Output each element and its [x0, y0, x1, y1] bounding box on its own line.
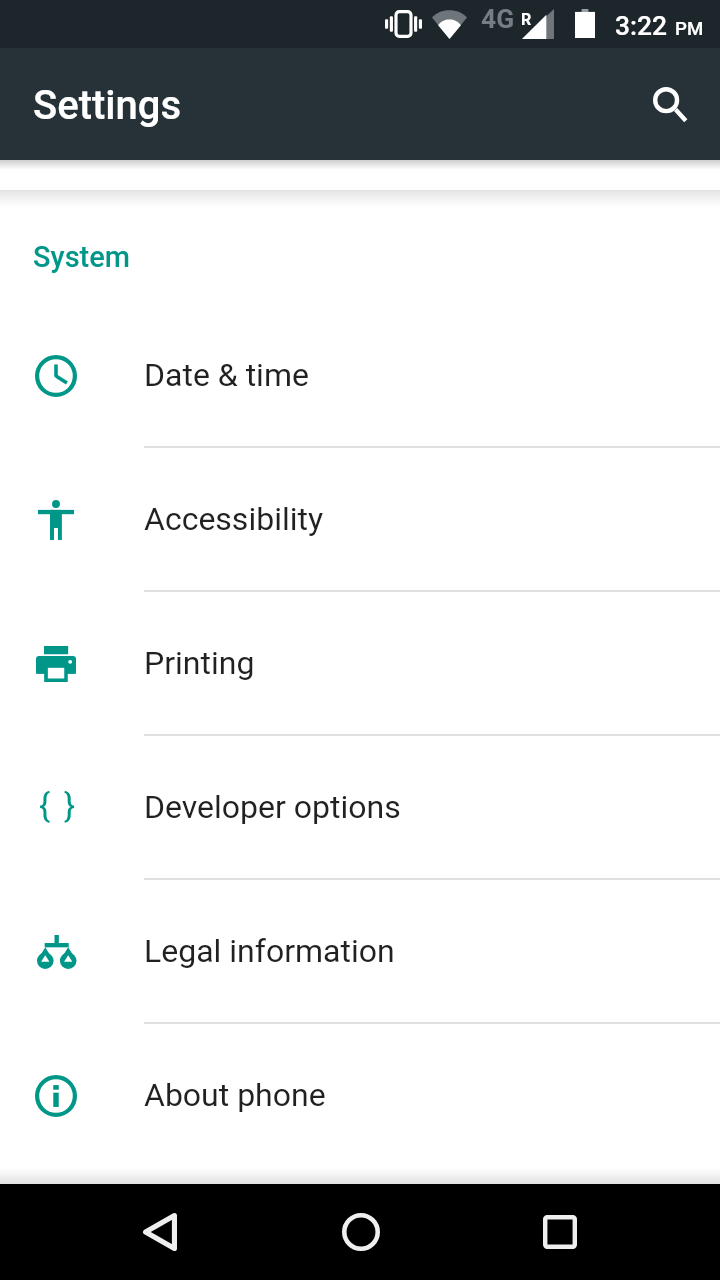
staticText: Settings [33, 82, 182, 129]
staticText: System [33, 240, 131, 274]
staticText: Developer options [144, 788, 401, 826]
staticText: PM [675, 18, 704, 40]
button[interactable]: Back [110, 1184, 210, 1280]
button[interactable]: About phone [0, 1024, 720, 1168]
staticText: { } [39, 786, 78, 825]
button[interactable]: Legal information [0, 880, 720, 1024]
button[interactable]: Search [622, 56, 718, 152]
staticText: Date & time [144, 356, 309, 394]
staticText: 3:22 [615, 11, 667, 42]
staticText: About phone [144, 1076, 326, 1114]
staticText: Legal information [144, 932, 395, 970]
button[interactable]: Date & time [0, 304, 720, 448]
staticText: R [521, 10, 532, 29]
button[interactable]: Recents [510, 1184, 610, 1280]
button[interactable]: { } [0, 736, 720, 880]
button[interactable]: Printing [0, 592, 720, 736]
staticText: Printing [144, 644, 255, 682]
button[interactable]: Home [311, 1184, 411, 1280]
button[interactable]: Accessibility [0, 448, 720, 592]
staticText: 4G [481, 4, 515, 35]
staticText: Accessibility [144, 500, 324, 538]
